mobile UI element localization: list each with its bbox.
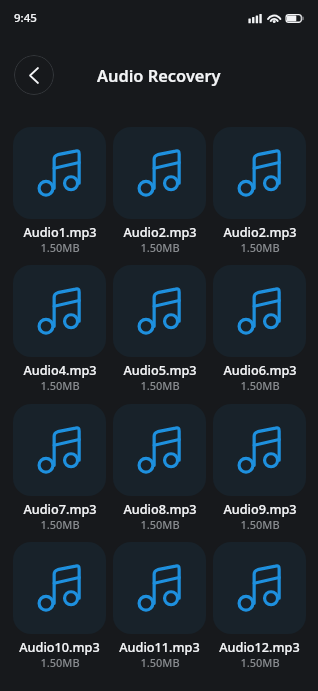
staticText: 1.50MB — [40, 378, 80, 393]
staticText: 1.50MB — [140, 378, 180, 393]
button[interactable]: Audio2.mp3 — [213, 127, 306, 255]
staticText: Audio7.mp3 — [23, 500, 97, 517]
staticText: 1.50MB — [240, 378, 280, 393]
staticText: 1.50MB — [140, 517, 180, 532]
staticText: Audio11.mp3 — [119, 638, 200, 655]
button[interactable]: Audio2.mp3 — [113, 127, 206, 255]
button[interactable]: Audio8.mp3 — [113, 404, 206, 532]
staticText: Audio1.mp3 — [23, 223, 97, 240]
button[interactable]: Audio10.mp3 — [13, 542, 106, 670]
button[interactable]: Audio5.mp3 — [113, 265, 206, 393]
staticText: 9:45 — [14, 10, 37, 26]
staticText: Audio Recovery — [97, 64, 221, 86]
button[interactable]: Audio6.mp3 — [213, 265, 306, 393]
button[interactable]: Audio11.mp3 — [113, 542, 206, 670]
staticText: Audio2.mp3 — [123, 223, 197, 240]
staticText: Audio9.mp3 — [223, 500, 297, 517]
staticText: 1.50MB — [40, 517, 80, 532]
button[interactable]: Audio7.mp3 — [13, 404, 106, 532]
button[interactable]: Audio1.mp3 — [13, 127, 106, 255]
staticText: Audio5.mp3 — [123, 361, 197, 378]
staticText: 1.50MB — [240, 517, 280, 532]
staticText: Audio2.mp3 — [223, 223, 297, 240]
button[interactable]: Audio9.mp3 — [213, 404, 306, 532]
staticText: Audio10.mp3 — [19, 638, 100, 655]
staticText: Audio12.mp3 — [219, 638, 300, 655]
staticText: Audio6.mp3 — [223, 361, 297, 378]
button[interactable]: Audio12.mp3 — [213, 542, 306, 670]
staticText: 1.50MB — [40, 240, 80, 255]
staticText: 1.50MB — [240, 655, 280, 670]
staticText: 1.50MB — [140, 240, 180, 255]
button[interactable]: Audio4.mp3 — [13, 265, 106, 393]
staticText: 1.50MB — [240, 240, 280, 255]
button[interactable]: Back — [14, 55, 54, 95]
staticText: 1.50MB — [140, 655, 180, 670]
staticText: 1.50MB — [40, 655, 80, 670]
staticText: Audio8.mp3 — [123, 500, 197, 517]
staticText: Audio4.mp3 — [23, 361, 97, 378]
